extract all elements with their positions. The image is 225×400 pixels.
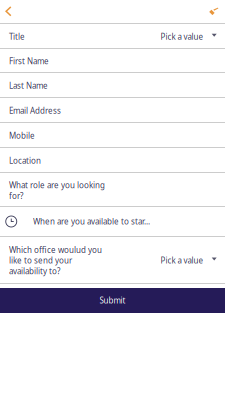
staticText: Pick a value — [160, 31, 203, 42]
button[interactable]: Email Address — [0, 98, 225, 123]
button[interactable]: Location — [0, 148, 225, 173]
button[interactable]: Mobile — [0, 123, 225, 148]
button[interactable]: Last Name — [0, 73, 225, 98]
staticText: Last Name — [9, 80, 48, 91]
button[interactable]: Back — [0, 1, 18, 22]
staticText: Pick a value — [160, 255, 203, 266]
button[interactable]: Which office woulud you like to send you… — [0, 237, 225, 284]
button[interactable]: Title — [0, 24, 225, 49]
button[interactable]: What role are you looking for? — [0, 173, 225, 207]
button[interactable]: Submit — [0, 288, 225, 313]
staticText: Title — [9, 31, 25, 42]
staticText: Location — [9, 155, 41, 166]
staticText: First Name — [9, 56, 49, 66]
staticText: Submit — [99, 295, 125, 306]
button[interactable]: When are you available to star... — [0, 207, 225, 237]
button[interactable]: Theme — [203, 1, 225, 22]
staticText: What role are you looking for? — [9, 180, 105, 201]
staticText: Email Address — [9, 105, 61, 116]
staticText: When are you available to star... — [33, 216, 150, 227]
staticText: Which office woulud you like to send you… — [9, 245, 102, 276]
staticText: Mobile — [9, 130, 35, 141]
button[interactable]: First Name — [0, 49, 225, 73]
